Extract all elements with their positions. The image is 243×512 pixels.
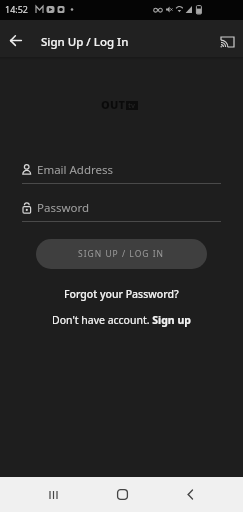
staticText: Email Address (37, 162, 114, 178)
staticText: 14:52 (5, 3, 29, 15)
button[interactable] (22, 197, 221, 222)
button[interactable]: Forgot your Password? (64, 287, 179, 301)
button[interactable]: Don't have account. Sign up (52, 313, 191, 327)
button[interactable] (30, 477, 78, 512)
staticText: Sign Up / Log In (41, 34, 129, 50)
staticText: tv (128, 101, 136, 110)
staticText: SIGN UP / LOG IN (78, 248, 165, 260)
button[interactable] (166, 477, 214, 512)
button[interactable] (220, 35, 235, 49)
button[interactable]: SIGN UP / LOG IN (36, 239, 207, 269)
button[interactable] (8, 33, 24, 49)
button[interactable] (22, 159, 221, 184)
staticText: Password (37, 200, 90, 216)
button[interactable] (98, 477, 146, 512)
staticText: OUT (101, 97, 126, 112)
